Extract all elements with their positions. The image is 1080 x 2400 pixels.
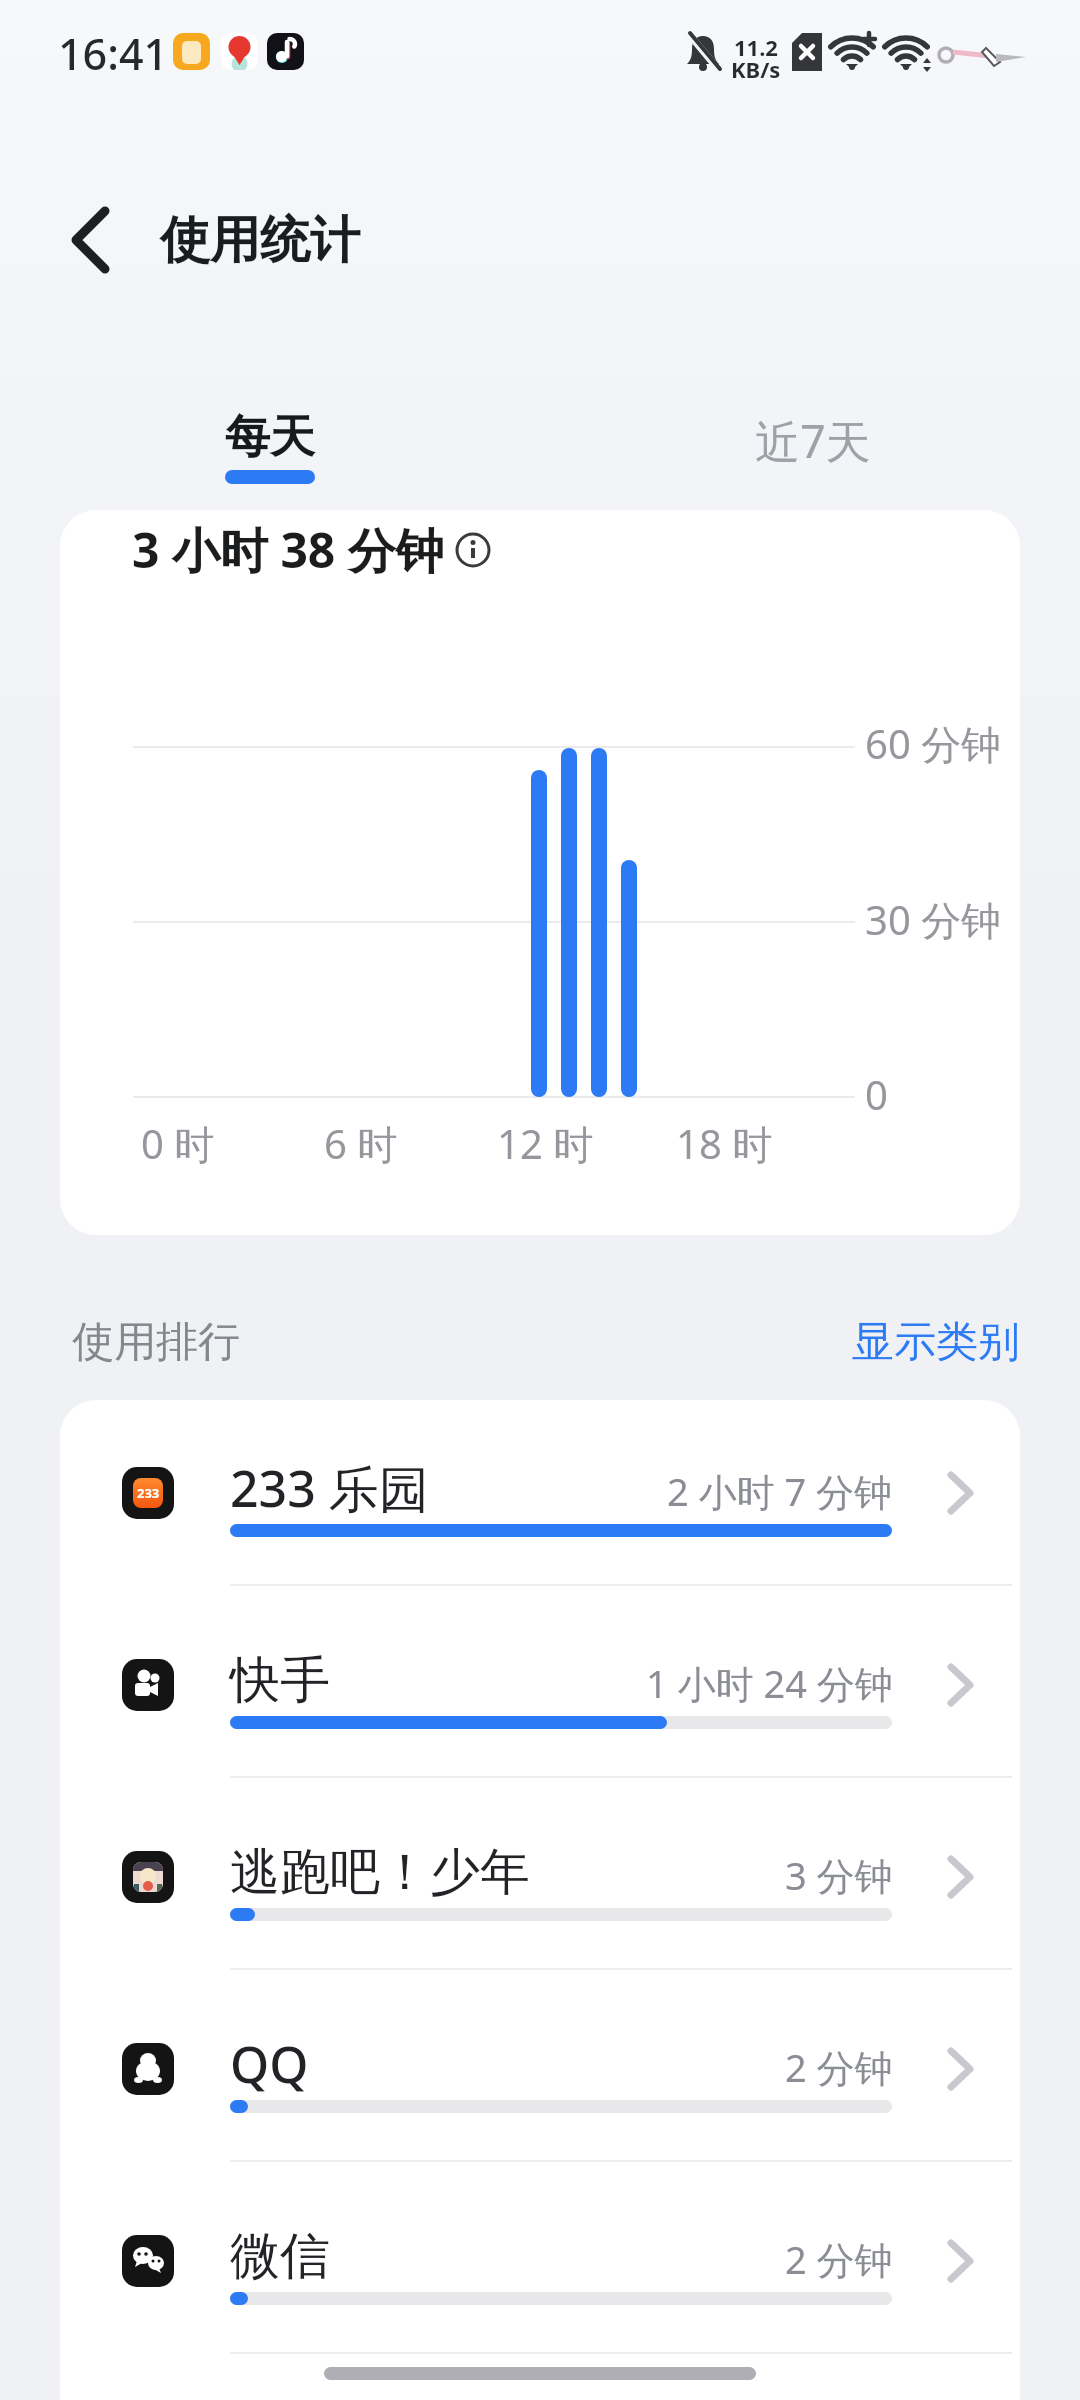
staticText: 每天 (225, 409, 315, 466)
staticText: 使用排行 (72, 1316, 240, 1369)
staticText: 16:41 (58, 24, 169, 83)
button[interactable]: 显示类别 (850, 1292, 1020, 1392)
staticText: 2 分钟 (785, 2233, 893, 2285)
button[interactable] (48, 206, 132, 276)
staticText: 微信 (230, 2225, 330, 2288)
staticText: 11.2 (734, 32, 778, 62)
staticText: KB/s (731, 54, 781, 84)
staticText: 0 (865, 1067, 888, 1121)
staticText: 18 时 (676, 1116, 773, 1171)
staticText: 30 分钟 (865, 892, 1002, 947)
button[interactable] (730, 395, 910, 495)
staticText: 60 分钟 (865, 716, 1002, 771)
staticText: 233 (137, 1484, 160, 1502)
staticText: 显示类别 (852, 1316, 1020, 1369)
staticText: 3 小时 38 分钟 (132, 517, 444, 583)
staticText: 2 小时 7 分钟 (667, 1465, 893, 1517)
staticText: 使用统计 (160, 209, 360, 272)
button[interactable] (180, 395, 360, 495)
staticText: 逃跑吧！少年 (230, 1841, 530, 1904)
staticText: 3 分钟 (785, 1849, 893, 1901)
staticText: 233 乐园 (230, 1454, 429, 1522)
button[interactable] (60, 1400, 1020, 1592)
staticText: 1 小时 24 分钟 (646, 1657, 893, 1709)
button[interactable] (60, 1592, 1020, 1784)
staticText: 近7天 (755, 410, 871, 471)
staticText: 12 时 (497, 1116, 594, 1171)
staticText: 0 时 (141, 1116, 215, 1171)
button[interactable] (60, 2168, 1020, 2360)
staticText: 快手 (230, 1649, 330, 1712)
staticText: 6 时 (324, 1116, 398, 1171)
staticText: 2 分钟 (785, 2041, 893, 2093)
button[interactable] (60, 1784, 1020, 1976)
staticText: QQ (230, 2030, 309, 2098)
button[interactable] (60, 1976, 1020, 2168)
